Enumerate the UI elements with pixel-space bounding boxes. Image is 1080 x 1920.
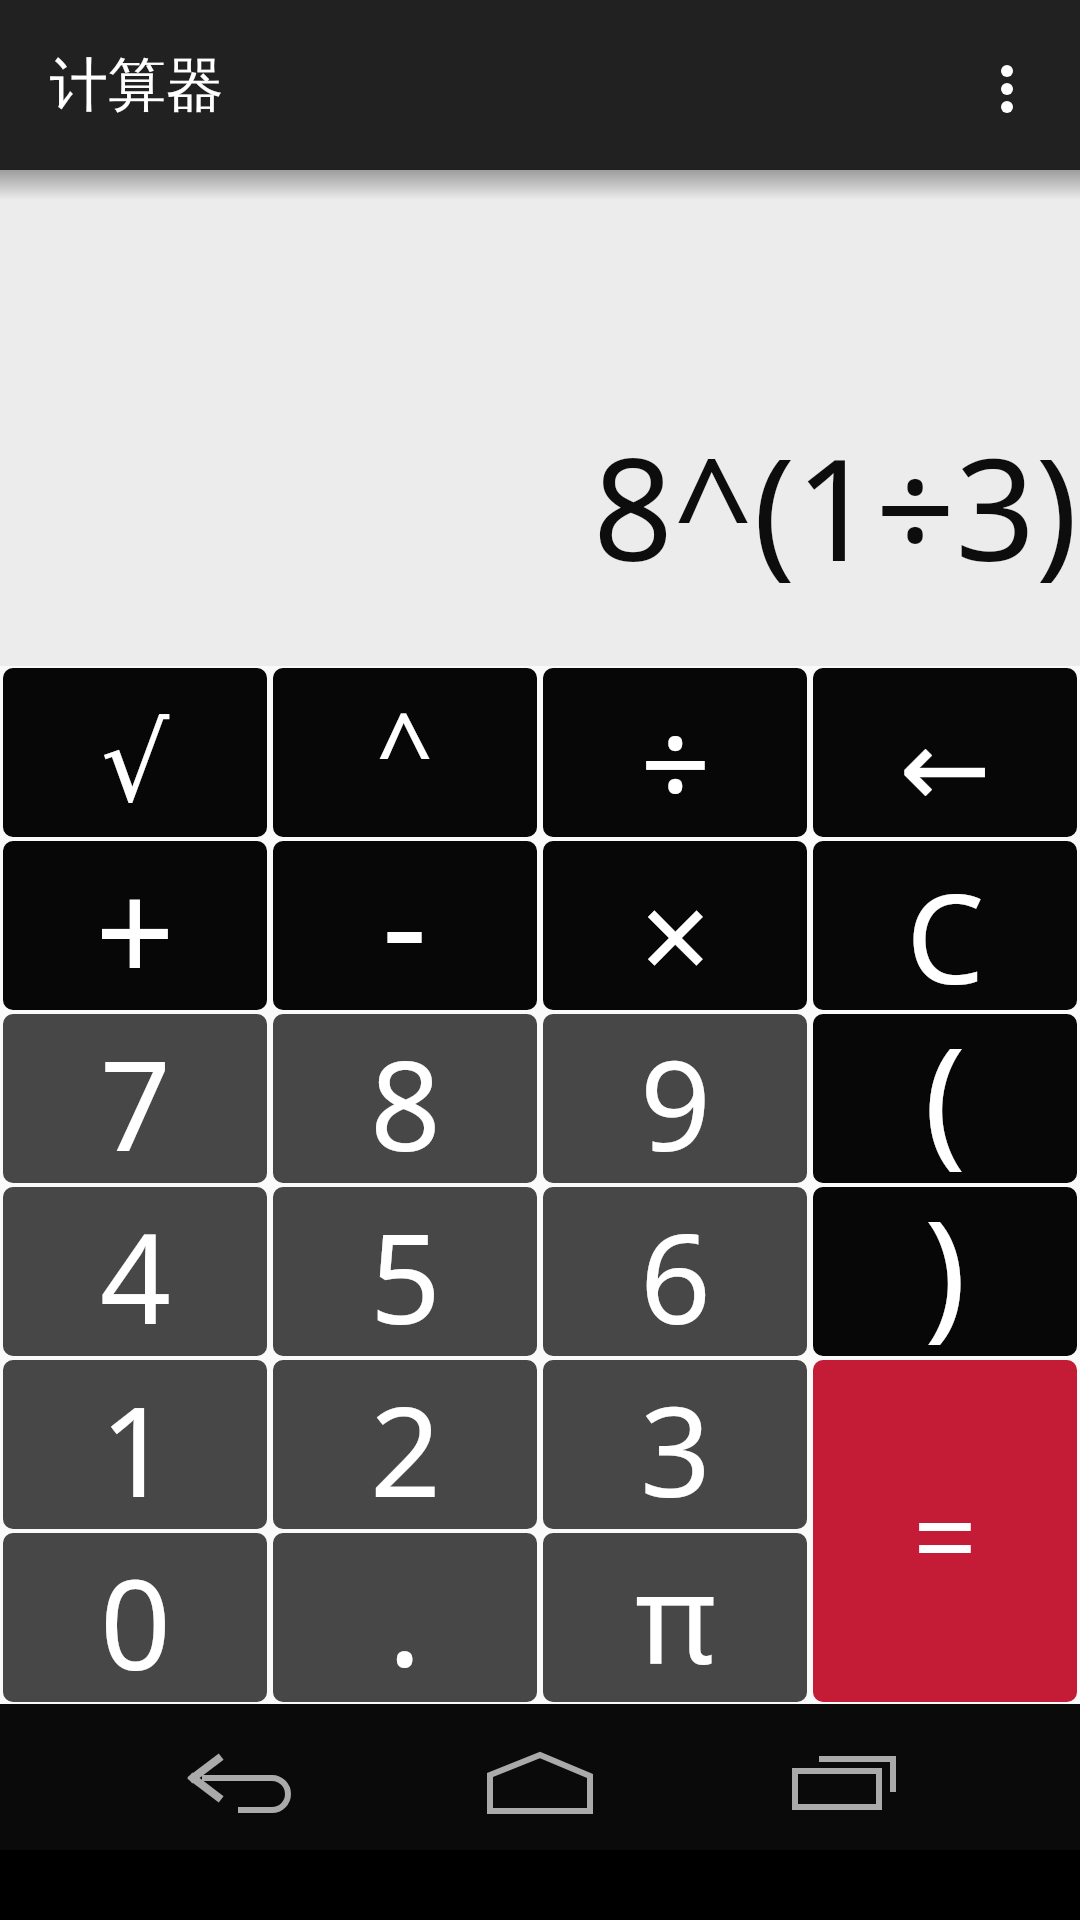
staticText: ^ (376, 679, 434, 815)
button[interactable]: ( (813, 1014, 1077, 1183)
button[interactable]: 9 (543, 1014, 807, 1183)
button[interactable]: √ (3, 668, 267, 837)
button[interactable]: - (273, 841, 537, 1010)
button[interactable]: ← (813, 668, 1077, 837)
button[interactable] (934, 0, 1080, 170)
button[interactable]: ^ (273, 668, 537, 837)
staticText: 2 (370, 1364, 441, 1529)
staticText: × (640, 849, 711, 1010)
staticText: 5 (370, 1191, 441, 1356)
button[interactable] (148, 1704, 328, 1850)
staticText: ( (924, 1014, 967, 1183)
button[interactable]: × (543, 841, 807, 1010)
staticText: ) (924, 1187, 967, 1356)
staticText: 8 (370, 1018, 441, 1183)
button[interactable]: 7 (3, 1014, 267, 1183)
staticText: + (95, 841, 176, 1010)
staticText: 0 (100, 1537, 171, 1702)
staticText: 7 (100, 1018, 171, 1183)
staticText: = (913, 1457, 978, 1610)
button[interactable]: ) (813, 1187, 1077, 1356)
button[interactable]: 6 (543, 1187, 807, 1356)
staticText: 6 (640, 1191, 711, 1356)
button[interactable]: 3 (543, 1360, 807, 1529)
staticText: 计算器 (50, 49, 224, 122)
button[interactable]: 5 (273, 1187, 537, 1356)
staticText: C (906, 851, 985, 1010)
staticText: 1 (100, 1364, 171, 1529)
button[interactable] (450, 1704, 630, 1850)
staticText: - (382, 841, 428, 1010)
staticText: π (635, 1533, 716, 1700)
staticText: 4 (100, 1191, 171, 1356)
button[interactable]: π (543, 1533, 807, 1702)
button[interactable]: . (273, 1533, 537, 1702)
button[interactable] (752, 1704, 932, 1850)
button[interactable]: = (813, 1360, 1077, 1702)
staticText: 3 (640, 1364, 711, 1529)
button[interactable]: + (3, 841, 267, 1010)
staticText: √ (101, 702, 170, 827)
button[interactable]: C (813, 841, 1077, 1010)
button[interactable]: 0 (3, 1533, 267, 1702)
button[interactable]: 4 (3, 1187, 267, 1356)
staticText: ← (899, 705, 992, 833)
button[interactable]: ÷ (543, 668, 807, 837)
staticText: 8^(1÷3) (593, 411, 1078, 602)
button[interactable]: 8 (273, 1014, 537, 1183)
staticText: ÷ (640, 676, 711, 837)
staticText: 9 (640, 1018, 711, 1183)
button[interactable]: 1 (3, 1360, 267, 1529)
button[interactable]: 2 (273, 1360, 537, 1529)
staticText: . (388, 1533, 422, 1702)
